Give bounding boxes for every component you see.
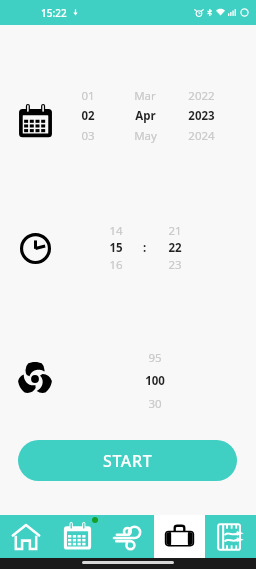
staticText: 21 — [168, 223, 182, 239]
button[interactable]: Mar — [105, 88, 185, 104]
button[interactable]: 14 — [76, 223, 156, 239]
button[interactable]: Wind — [103, 515, 154, 558]
button[interactable]: START — [18, 440, 237, 481]
staticText: 02 — [81, 108, 95, 124]
staticText: May — [134, 128, 157, 144]
staticText: 22 — [168, 240, 182, 256]
button[interactable]: 01 — [48, 88, 128, 104]
staticText: 2022 — [188, 88, 215, 104]
button[interactable]: 15 — [76, 240, 156, 256]
staticText: 30 — [148, 396, 162, 412]
button[interactable]: 02 — [48, 108, 128, 124]
staticText: START — [103, 450, 153, 472]
staticText: Mar — [134, 88, 156, 104]
staticText: 16 — [109, 257, 123, 273]
button[interactable]: 100 — [115, 373, 195, 389]
staticText: 23 — [168, 257, 182, 273]
button[interactable]: 2024 — [161, 128, 241, 144]
button[interactable]: Vent — [205, 515, 256, 558]
staticText: 95 — [148, 350, 162, 366]
button[interactable]: Schedule — [52, 515, 103, 558]
staticText: 15:22 — [41, 6, 67, 20]
staticText: 2023 — [188, 108, 215, 124]
button[interactable]: Home — [0, 515, 52, 558]
button[interactable]: 2023 — [161, 108, 241, 124]
button[interactable]: 23 — [135, 257, 215, 273]
staticText: 14 — [109, 223, 123, 239]
button[interactable]: 30 — [115, 396, 195, 412]
staticText: 01 — [81, 88, 95, 104]
button[interactable]: 2022 — [161, 88, 241, 104]
staticText: 03 — [81, 128, 95, 144]
button[interactable]: 16 — [76, 257, 156, 273]
button[interactable]: Apr — [105, 108, 185, 124]
button[interactable]: 22 — [135, 240, 215, 256]
staticText: 100 — [145, 373, 165, 389]
staticText: 15 — [109, 240, 123, 256]
button[interactable]: Luggage — [154, 515, 205, 558]
staticText: : — [143, 240, 147, 256]
button[interactable]: 21 — [135, 223, 215, 239]
button[interactable]: 95 — [115, 350, 195, 366]
staticText: 2024 — [188, 128, 215, 144]
staticText: Apr — [135, 108, 156, 124]
button[interactable]: 03 — [48, 128, 128, 144]
button[interactable]: May — [105, 128, 185, 144]
